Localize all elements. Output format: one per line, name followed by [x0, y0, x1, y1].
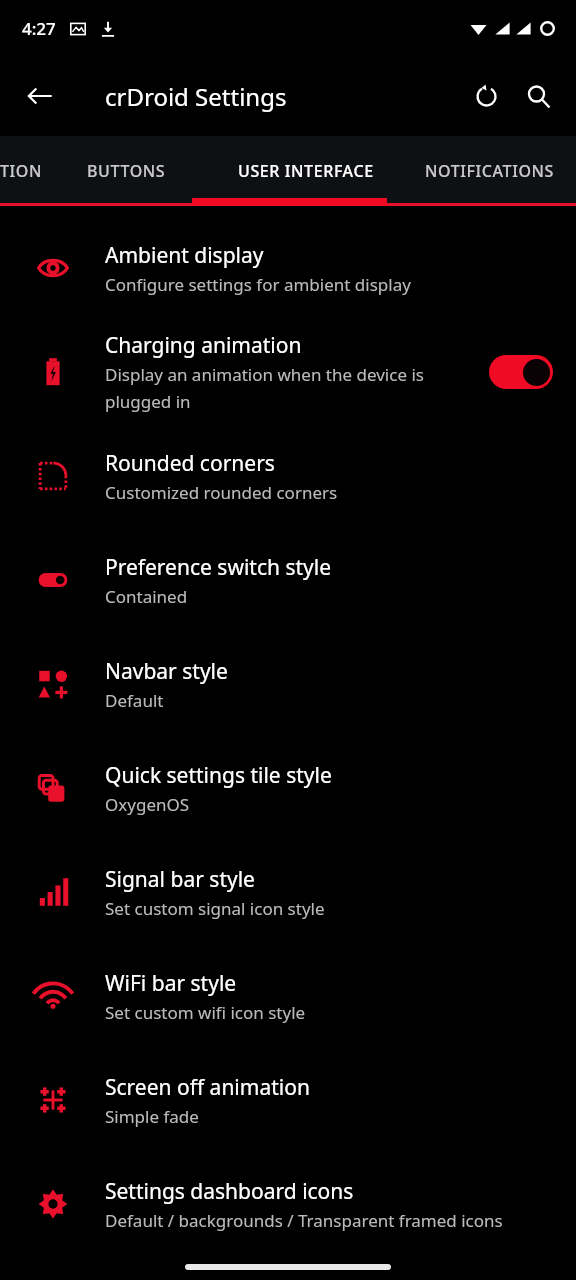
- staticText: Quick settings tile style: [105, 761, 332, 790]
- staticText: TION: [0, 160, 43, 182]
- staticText: OxygenOS: [105, 793, 190, 816]
- staticText: Navbar style: [105, 657, 228, 686]
- staticText: Charging animation: [105, 331, 302, 360]
- staticText: USER INTERFACE: [238, 160, 374, 182]
- button[interactable]: Quick settings tile style: [0, 736, 576, 840]
- staticText: Configure settings for ambient display: [105, 273, 411, 296]
- staticText: Set custom signal icon style: [105, 897, 325, 920]
- staticText: Set custom wifi icon style: [105, 1001, 306, 1024]
- button[interactable]: WiFi bar style: [0, 944, 576, 1048]
- button[interactable]: Navbar style: [0, 632, 576, 736]
- staticText: crDroid Settings: [105, 80, 287, 113]
- staticText: Preference switch style: [105, 553, 332, 582]
- staticText: Ambient display: [105, 241, 264, 270]
- button[interactable]: Restore defaults: [460, 70, 512, 122]
- button[interactable]: Ambient display: [0, 216, 576, 320]
- staticText: Customized rounded corners: [105, 481, 338, 504]
- button[interactable]: NOTIFICATIONS: [403, 136, 576, 206]
- button[interactable]: Charging animation: [0, 320, 576, 424]
- staticText: Default: [105, 689, 164, 712]
- button[interactable]: Rounded corners: [0, 424, 576, 528]
- button[interactable]: Search: [512, 70, 564, 122]
- staticText: Screen off animation: [105, 1073, 310, 1102]
- button[interactable]: USER INTERFACE: [208, 136, 403, 206]
- button[interactable]: TION: [0, 136, 45, 206]
- button[interactable]: Screen off animation: [0, 1048, 576, 1152]
- button[interactable]: Charging animation toggle: [489, 355, 553, 389]
- button[interactable]: Signal bar style: [0, 840, 576, 944]
- staticText: BUTTONS: [87, 160, 166, 182]
- staticText: WiFi bar style: [105, 969, 237, 998]
- staticText: Rounded corners: [105, 449, 275, 478]
- staticText: Signal bar style: [105, 865, 255, 894]
- button[interactable]: BUTTONS: [45, 136, 208, 206]
- staticText: Display an animation when the device is …: [105, 363, 477, 413]
- staticText: NOTIFICATIONS: [425, 160, 554, 182]
- staticText: Contained: [105, 585, 188, 608]
- button[interactable]: Back: [16, 72, 64, 120]
- staticText: Default / backgrounds / Transparent fram…: [105, 1209, 503, 1232]
- staticText: Simple fade: [105, 1105, 199, 1128]
- button[interactable]: Preference switch style: [0, 528, 576, 632]
- staticText: 4:27: [22, 17, 56, 40]
- staticText: Settings dashboard icons: [105, 1177, 354, 1206]
- button[interactable]: Settings dashboard icons: [0, 1152, 576, 1256]
